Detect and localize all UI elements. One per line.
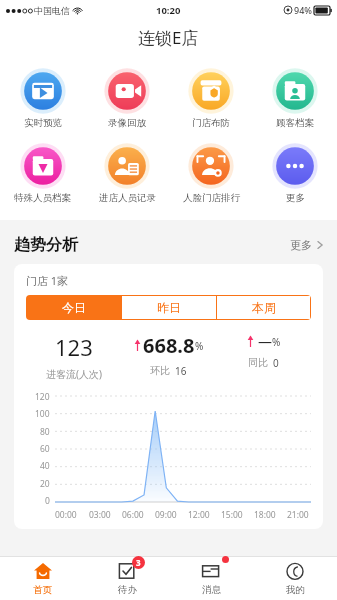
staticText: 03:00 [89,509,111,521]
staticText: 12:00 [188,509,210,521]
staticText: 00:00 [55,509,77,521]
staticText: 门店布防 [192,117,230,129]
button[interactable]: 特殊人员档案 [0,139,85,208]
staticText: 94% [294,4,312,16]
staticText: — [258,332,272,351]
staticText: 20 [40,478,50,490]
staticText: 同比 [248,356,268,369]
button[interactable]: 昨日 [121,295,216,320]
button[interactable]: 实时预览 [0,64,85,133]
staticText: 趋势分析 [14,235,78,255]
button[interactable]: 消息 [169,557,253,600]
staticText: 0 [273,356,279,370]
staticText: 实时预览 [24,117,62,129]
button[interactable]: 本周 [216,295,311,320]
staticText: 10:20 [156,4,181,17]
staticText: 40 [40,460,50,472]
staticText: 我的 [286,584,305,596]
staticText: 今日 [62,300,86,315]
staticText: 首页 [33,584,52,596]
button[interactable]: 更多 [288,234,325,256]
button[interactable]: 进店人员记录 [85,139,169,208]
button[interactable]: 待办 [85,557,169,600]
button[interactable]: 今日 [26,295,121,320]
staticText: 80 [40,426,50,438]
button[interactable]: 人脸门店排行 [169,139,253,208]
staticText: 待办 [118,584,137,596]
staticText: 人脸门店排行 [183,192,240,204]
staticText: 09:00 [155,509,177,521]
staticText: 连锁E店 [138,26,199,49]
staticText: 60 [40,443,50,455]
staticText: 16 [175,364,187,378]
staticText: 15:00 [221,509,243,521]
staticText: 18:00 [254,509,276,521]
button[interactable]: 首页 [0,557,85,600]
staticText: 录像回放 [108,117,146,129]
staticText: 120 [35,391,50,403]
staticText: 本周 [252,300,276,315]
staticText: 环比 [150,364,170,377]
staticText: 中国电信 [34,5,70,16]
staticText: % [272,335,281,349]
staticText: 06:00 [122,509,144,521]
staticText: 消息 [202,584,221,596]
button[interactable]: 更多 [253,139,337,208]
staticText: 门店 1家 [26,273,69,288]
staticText: 668.8 [143,332,195,359]
button[interactable]: 顾客档案 [253,64,337,133]
staticText: 进店人员记录 [99,192,156,204]
staticText: 123 [55,332,93,362]
staticText: 昨日 [157,300,181,315]
staticText: % [195,339,204,353]
staticText: 100 [35,408,50,420]
staticText: 更多 [286,192,305,204]
staticText: 21:00 [287,509,309,521]
staticText: 顾客档案 [276,117,314,129]
staticText: 0 [45,495,50,507]
button[interactable]: 门店布防 [169,64,253,133]
button[interactable]: 录像回放 [85,64,169,133]
staticText: 3 [136,557,141,568]
staticText: 更多 [290,238,312,252]
button[interactable]: 我的 [253,557,337,600]
staticText: 特殊人员档案 [14,192,71,204]
staticText: 进客流(人次) [46,367,102,381]
